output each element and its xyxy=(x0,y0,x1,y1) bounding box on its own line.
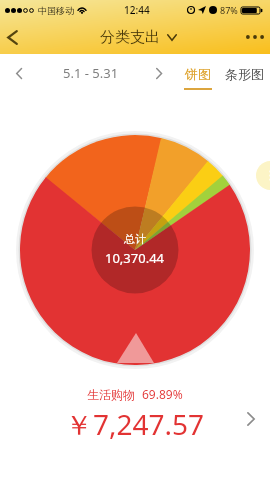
button[interactable]: 条形图 xyxy=(225,54,264,92)
button[interactable]: Back xyxy=(0,20,28,54)
staticText: 69.89% xyxy=(142,386,183,402)
staticText: 生活购物 xyxy=(87,387,135,402)
staticText: 5.1 - 5.31 xyxy=(63,64,119,82)
button[interactable]: Previous month xyxy=(0,54,38,92)
button[interactable]: More options xyxy=(240,20,270,54)
button[interactable]: Shortcut xyxy=(256,161,270,190)
staticText: 饼图 xyxy=(185,66,211,82)
button[interactable]: 饼图 xyxy=(184,54,212,92)
staticText: 87% xyxy=(220,4,238,16)
staticText: 条形图 xyxy=(225,66,264,82)
staticText: 12:44 xyxy=(124,3,150,17)
staticText: 中国移动 xyxy=(38,5,74,16)
staticText: 分类支出 xyxy=(100,28,160,47)
staticText: ￥7,247.57 xyxy=(65,405,205,443)
button[interactable]: 分类支出 xyxy=(100,28,177,47)
button[interactable]: Next category xyxy=(235,403,267,435)
staticText: 总计 xyxy=(124,232,146,246)
button[interactable]: Next month xyxy=(144,54,174,92)
staticText: 10,370.44 xyxy=(105,249,165,267)
